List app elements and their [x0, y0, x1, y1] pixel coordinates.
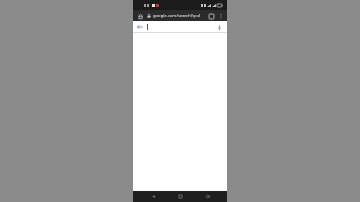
button[interactable]: Home [172, 191, 188, 202]
button[interactable]: Voice search [214, 22, 225, 33]
button[interactable]: Back [135, 22, 145, 32]
button[interactable] [147, 21, 214, 33]
button[interactable]: Recent apps [200, 191, 216, 202]
button[interactable]: Tabs [206, 11, 216, 21]
button[interactable]: google.com/search?q=d [147, 10, 205, 21]
button[interactable]: Home [135, 11, 145, 21]
button[interactable]: More options [216, 11, 225, 20]
staticText: google.com/search?q=d [153, 13, 201, 19]
button[interactable]: Back [145, 191, 161, 202]
